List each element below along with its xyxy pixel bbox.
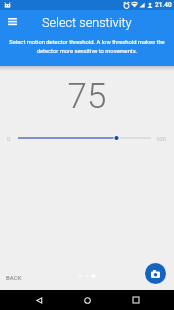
button[interactable]: BACK — [2, 271, 26, 284]
staticText: BACK — [6, 274, 22, 281]
button[interactable]: Take photo — [145, 263, 166, 284]
staticText: 0 — [7, 135, 11, 142]
button[interactable]: Home — [77, 290, 97, 310]
staticText: 100 — [156, 135, 167, 142]
button[interactable]: Back — [29, 290, 49, 310]
button[interactable]: Sensitivity slider — [0, 130, 174, 146]
staticText: 75 — [0, 76, 174, 117]
staticText: Select senstivity — [42, 15, 132, 30]
button[interactable]: Recent apps — [126, 290, 146, 310]
button[interactable]: Menu — [0, 9, 24, 33]
staticText: 21.40 — [155, 1, 172, 9]
staticText: Select motion detector threshold. A low … — [4, 39, 170, 55]
